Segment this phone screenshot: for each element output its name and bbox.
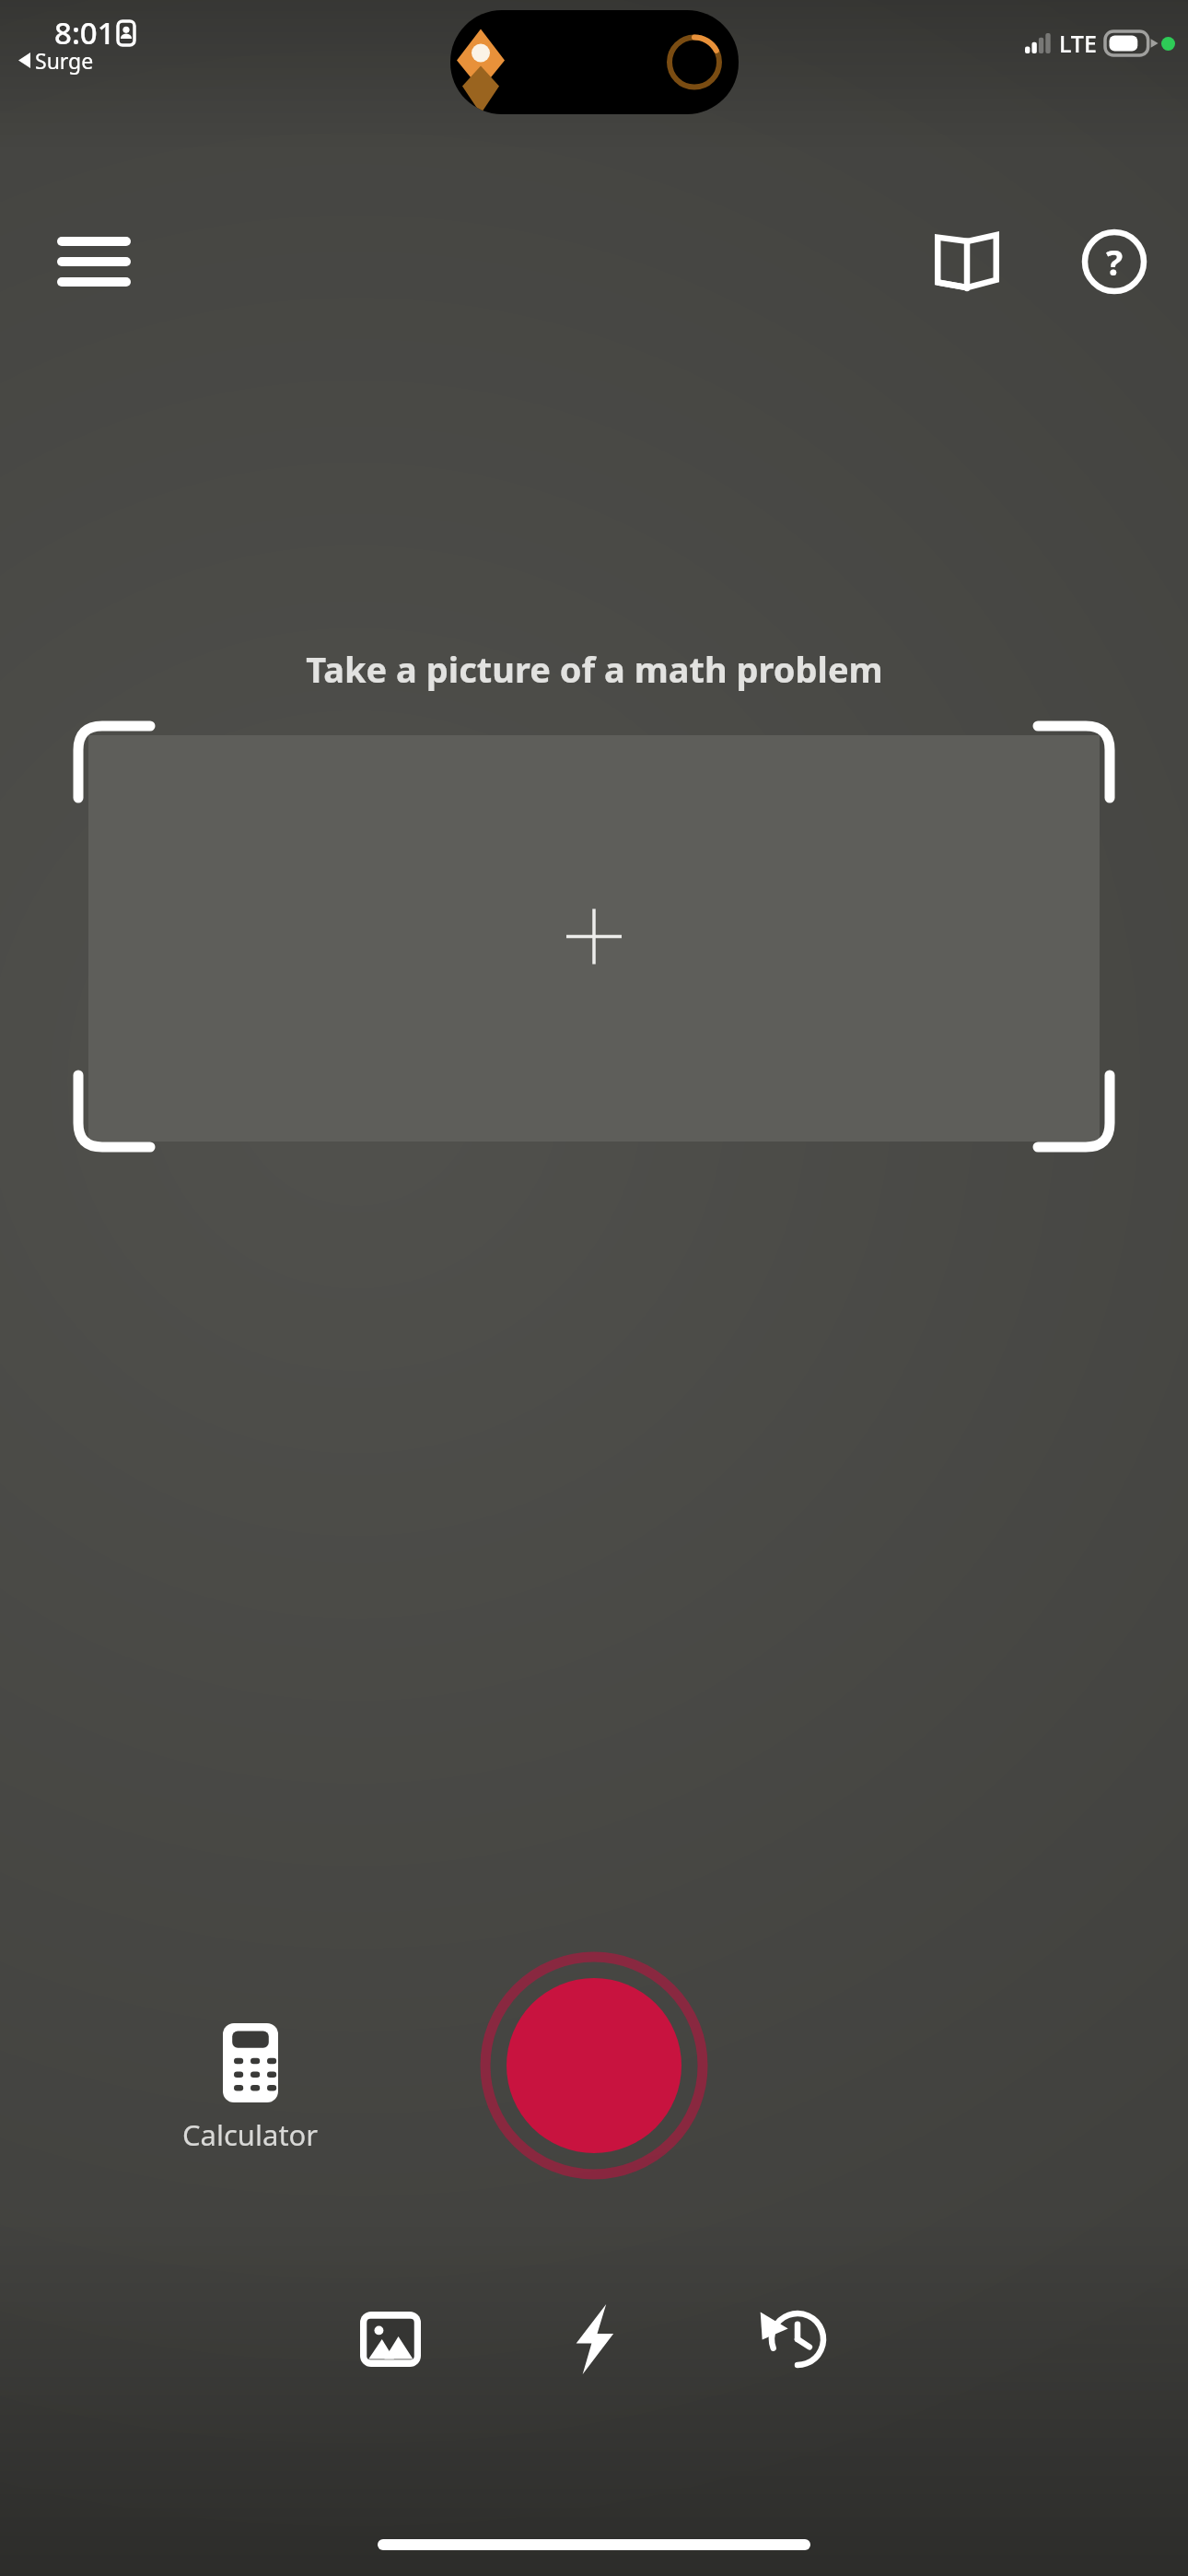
staticText: ? [1106, 238, 1124, 286]
staticText: LTE [1059, 28, 1097, 59]
button[interactable]: Capture [480, 1951, 708, 2180]
staticText: Take a picture of a math problem [306, 645, 883, 693]
button[interactable]: Glossary [915, 210, 1019, 313]
button[interactable]: Menu [42, 210, 146, 313]
button[interactable]: Help [1063, 210, 1166, 313]
button[interactable]: Gallery [336, 2285, 445, 2394]
staticText: Surge [35, 46, 94, 75]
staticText: 8:01 [54, 12, 115, 53]
staticText: Calculator [182, 2115, 319, 2154]
button[interactable]: History [743, 2285, 852, 2394]
button[interactable]: Flash [540, 2285, 648, 2394]
button[interactable]: Viewfinder [64, 712, 1124, 1161]
button[interactable]: Calculator [155, 2016, 346, 2161]
